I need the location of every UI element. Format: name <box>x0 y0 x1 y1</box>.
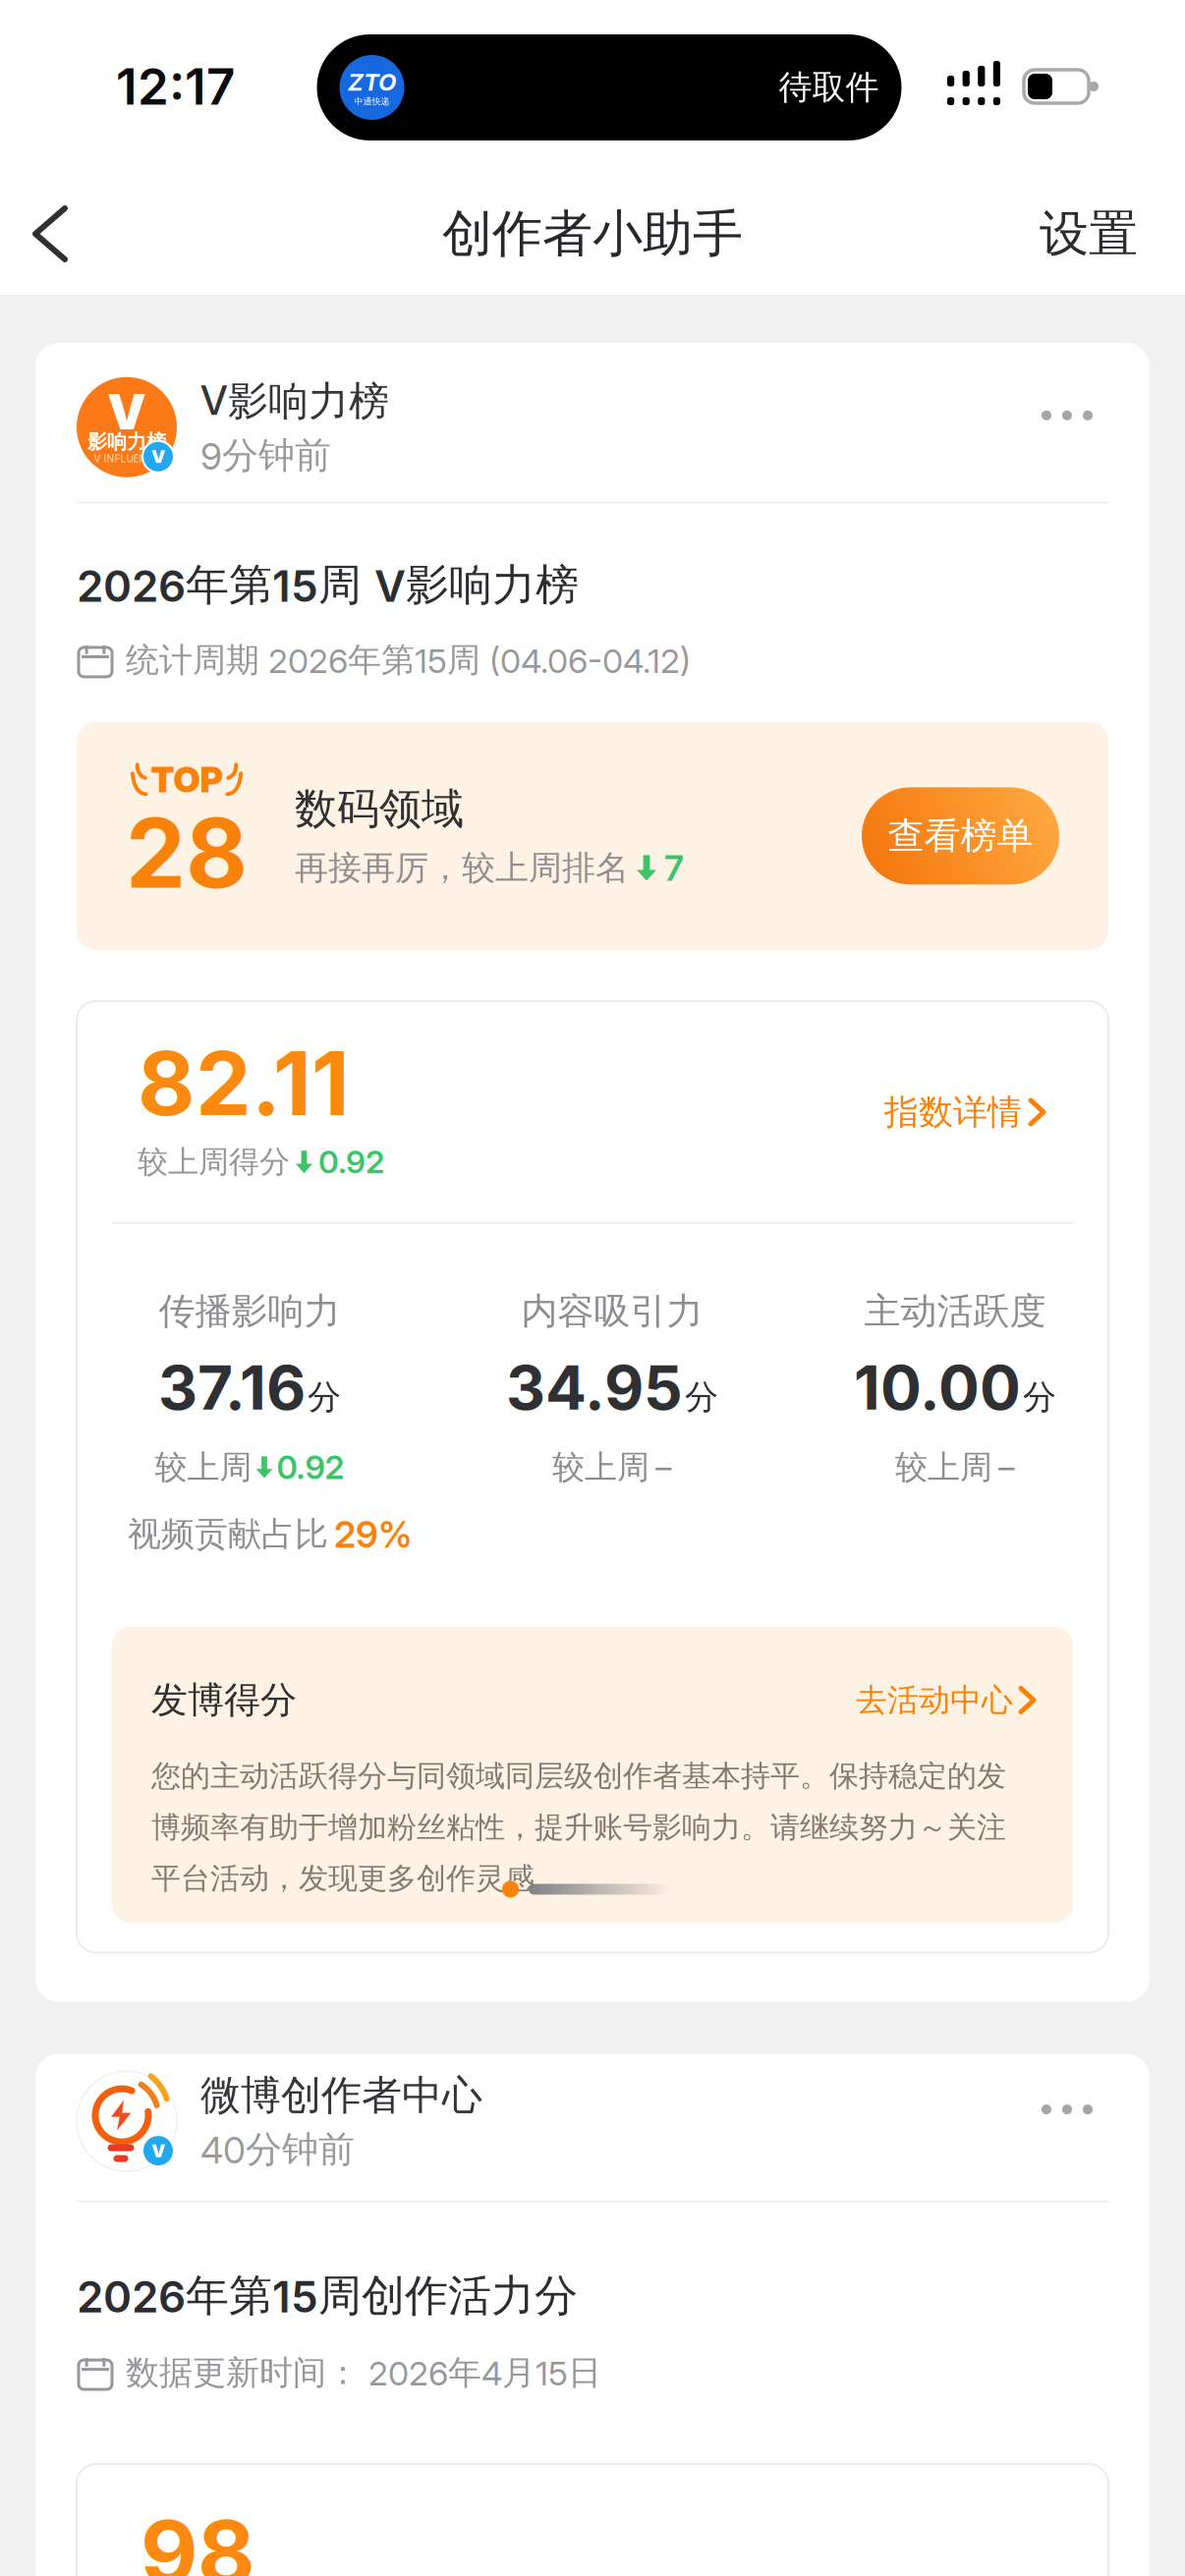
staticText: 微博创作者中心 <box>200 2071 482 2120</box>
staticText: 内容吸引力 <box>521 1289 703 1334</box>
staticText: 10.00 <box>854 1351 1021 1424</box>
staticText: 较上周 <box>895 1447 992 1487</box>
button[interactable]: 去活动中心 <box>856 1681 1034 1719</box>
staticText: 37.16 <box>158 1351 306 1424</box>
staticText: 29% <box>334 1513 412 1556</box>
staticText: 7 <box>664 847 684 889</box>
staticText: 视频贡献占比 <box>128 1514 328 1555</box>
staticText: 统计周期 2026年第15周 (04.06-04.12) <box>126 639 691 681</box>
staticText: 2026年第15周 V影响力榜 <box>77 559 579 612</box>
button[interactable]: 指数详情 <box>884 1091 1044 1133</box>
staticText: 12:17 <box>116 57 235 116</box>
staticText: 数码领域 <box>295 783 464 835</box>
staticText: V <box>151 446 165 467</box>
staticText: 较上周 <box>552 1447 649 1487</box>
staticText: 分 <box>685 1377 718 1418</box>
staticText: 指数详情 <box>884 1091 1022 1133</box>
button[interactable]: 更多 <box>1032 2085 1108 2134</box>
staticText: 分 <box>1023 1377 1056 1418</box>
staticText: 9分钟前 <box>200 433 331 478</box>
staticText: 分 <box>308 1377 341 1418</box>
staticText: 34.95 <box>506 1351 683 1424</box>
staticText: 数据更新时间： 2026年4月15日 <box>126 2352 601 2393</box>
staticText: 创作者小助手 <box>442 203 743 265</box>
staticText: 查看榜单 <box>888 813 1033 858</box>
staticText: 2026年第15周创作活力分 <box>77 2269 578 2323</box>
staticText: 中通快递 <box>354 96 390 107</box>
staticText: 发博得分 <box>151 1678 297 1723</box>
staticText: 您的主动活跃得分与同领域同层级创作者基本持平。保持稳定的发博频率有助于增加粉丝粘… <box>151 1758 1006 1897</box>
staticText: 去活动中心 <box>856 1681 1013 1719</box>
button[interactable]: 更多 <box>1032 391 1108 440</box>
staticText: 较上周 <box>155 1447 252 1487</box>
staticText: V INFLUENCE <box>94 453 160 465</box>
staticText: V影响力榜 <box>200 376 389 426</box>
staticText: 0.92 <box>318 1143 384 1181</box>
staticText: V <box>107 382 146 441</box>
staticText: 0.92 <box>277 1448 344 1486</box>
staticText: 较上周得分 <box>138 1143 290 1181</box>
staticText: 28 <box>126 796 248 909</box>
staticText: 再接再厉，较上周排名 <box>295 847 629 889</box>
staticText: – <box>655 1448 672 1486</box>
staticText: V <box>151 2140 165 2161</box>
staticText: 82.11 <box>138 1030 350 1135</box>
button[interactable]: 返回 <box>0 208 85 259</box>
staticText: 主动活跃度 <box>864 1289 1046 1334</box>
staticText: 40分钟前 <box>200 2127 355 2172</box>
button[interactable]: 设置 <box>1040 203 1185 264</box>
staticText: ZTO <box>348 68 396 96</box>
staticText: 待取件 <box>779 67 879 108</box>
staticText: 传播影响力 <box>159 1289 340 1334</box>
staticText: 影响力榜 <box>87 430 166 454</box>
staticText: TOP <box>151 758 223 800</box>
staticText: – <box>998 1448 1015 1486</box>
button[interactable]: 查看榜单 <box>862 787 1059 885</box>
staticText: 98 <box>141 2499 255 2576</box>
staticText: 设置 <box>1040 203 1138 264</box>
